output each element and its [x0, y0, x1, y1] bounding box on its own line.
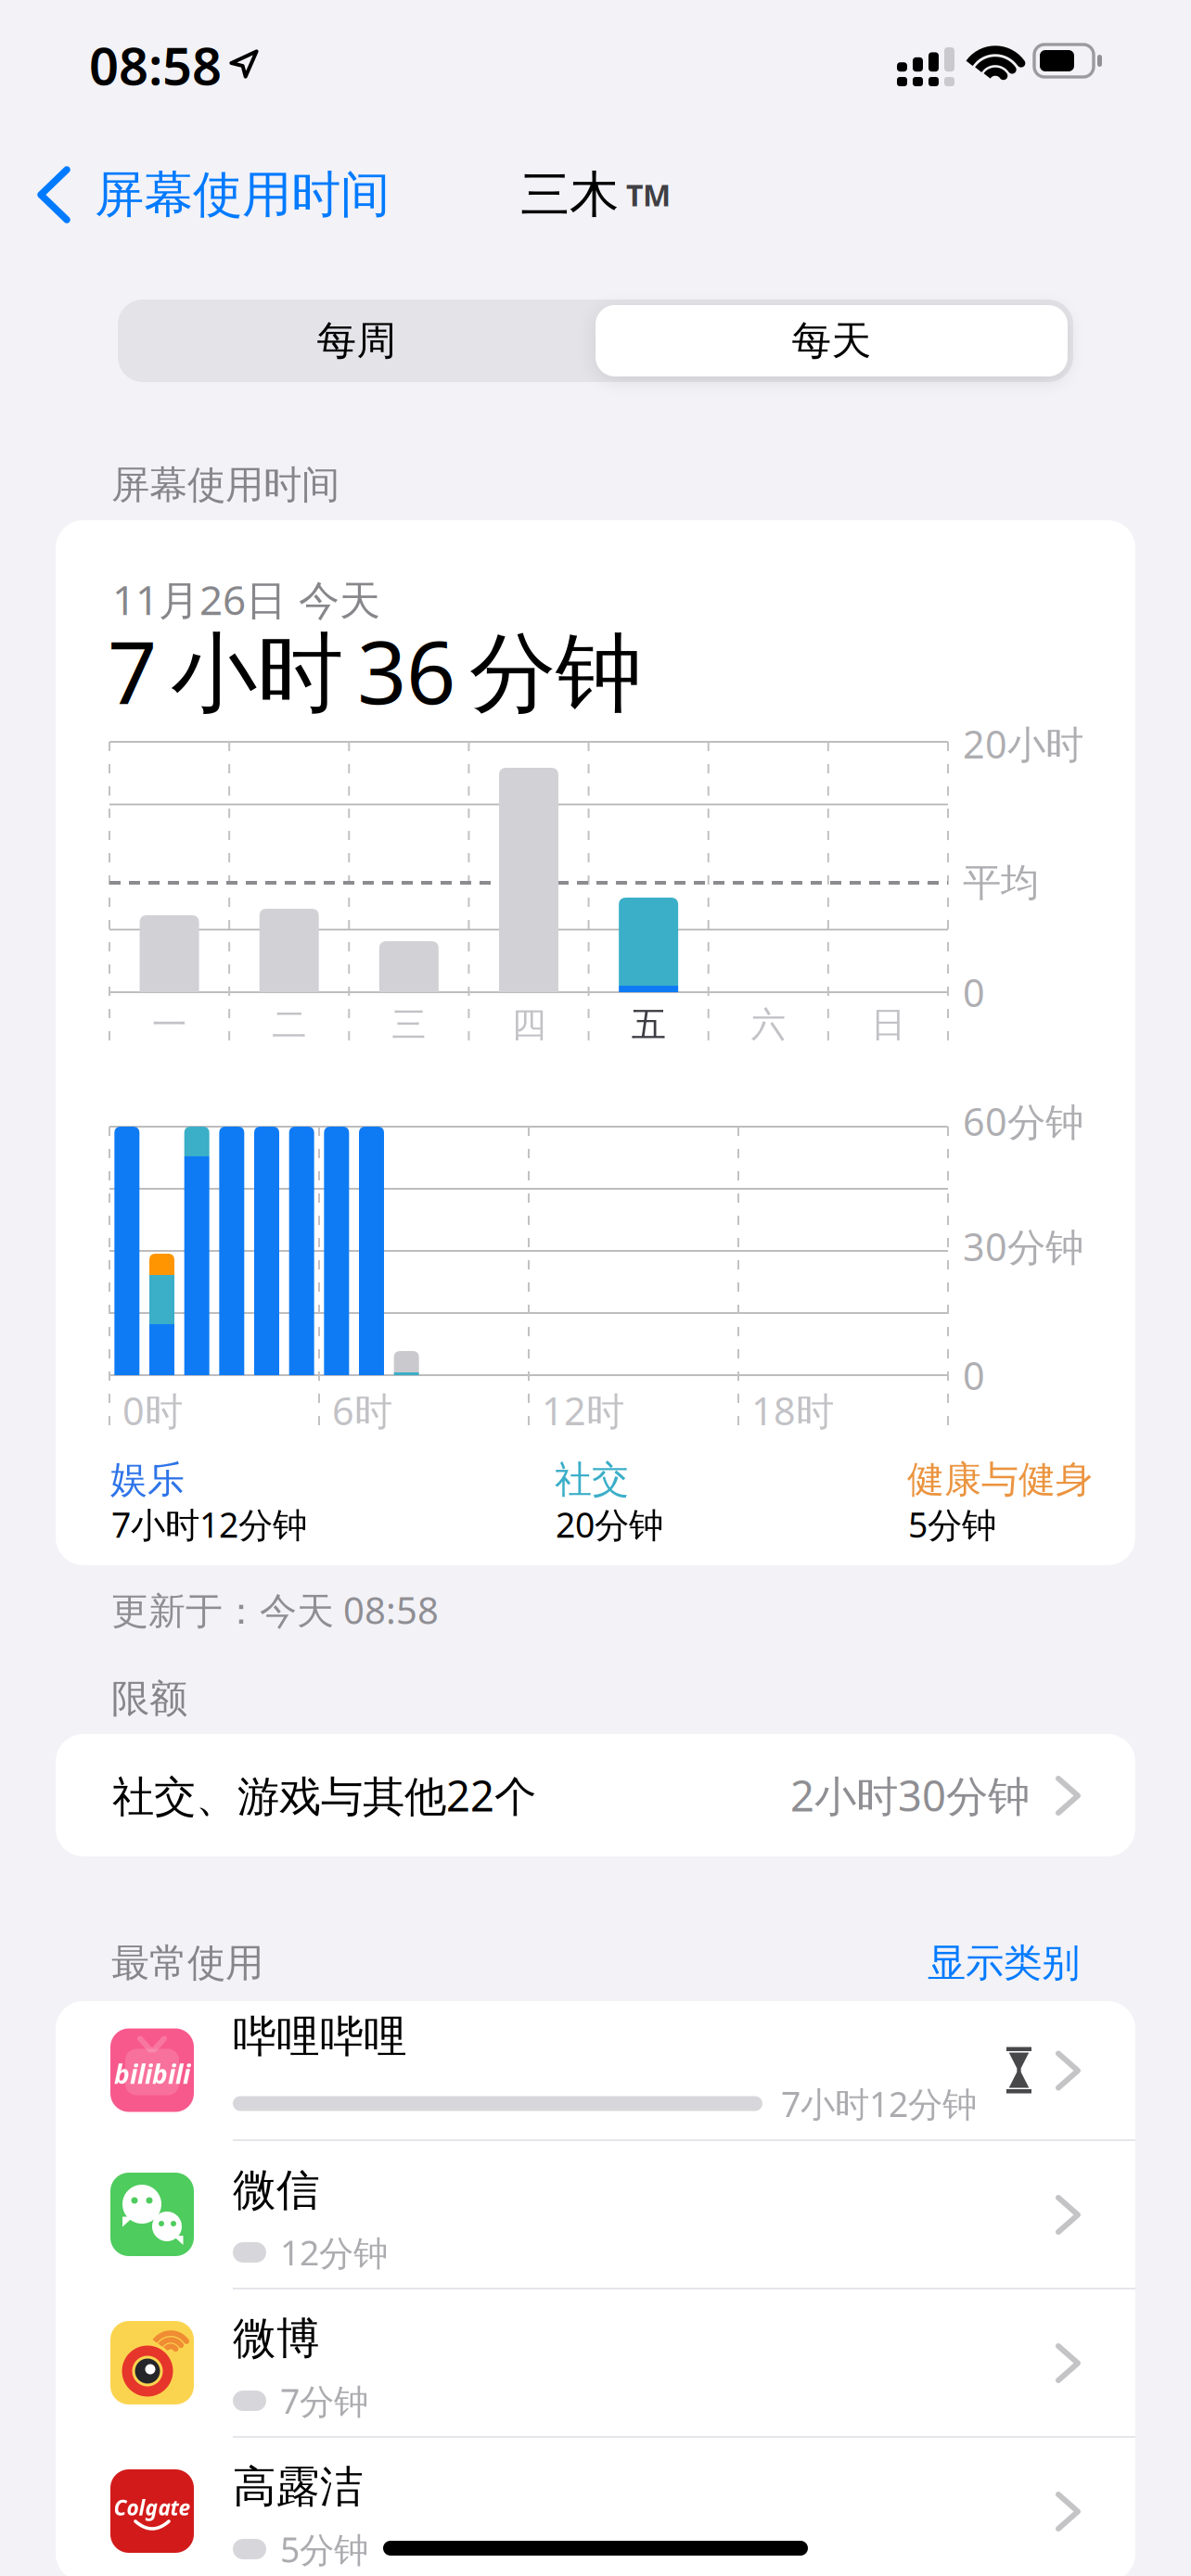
staticText: 每天 [792, 316, 871, 365]
staticText: 微博 [233, 2312, 320, 2365]
staticText: 高露洁 [233, 2460, 364, 2514]
button[interactable]: bilibili [56, 2001, 1135, 2139]
button[interactable]: 显示类别 [928, 1940, 1080, 1987]
button[interactable]: 每周 [118, 300, 595, 382]
staticText: 二 [272, 1003, 306, 1046]
staticText: 5分钟 [908, 1501, 996, 1547]
staticText: 11月26日 今天 [112, 572, 380, 626]
button[interactable]: 社交、游戏与其他22个 [56, 1734, 1135, 1856]
staticText: 20小时 [963, 718, 1083, 769]
staticText: 18时 [751, 1385, 834, 1436]
staticText: 7分钟 [280, 2378, 368, 2424]
staticText: 六 [751, 1003, 785, 1046]
staticText: 社交 [555, 1457, 629, 1502]
staticText: 日 [871, 1003, 905, 1046]
button[interactable]: 微信 [56, 2141, 1135, 2288]
staticText: 2小时30分钟 [790, 1767, 1030, 1823]
staticText: 显示类别 [928, 1940, 1080, 1987]
staticText: 7小时12分钟 [111, 1501, 307, 1547]
button[interactable]: Colgate [56, 2438, 1135, 2576]
staticText: bilibili [114, 2057, 190, 2091]
staticText: 60分钟 [963, 1096, 1083, 1147]
staticText: 四 [512, 1003, 546, 1046]
button[interactable]: 微博 [56, 2289, 1135, 2436]
staticText: 健康与健身 [907, 1457, 1093, 1502]
staticText: 0时 [122, 1385, 183, 1436]
staticText: 最常使用 [111, 1940, 263, 1987]
staticText: 12分钟 [280, 2229, 388, 2275]
staticText: 20分钟 [556, 1501, 663, 1547]
staticText: 08:58 [89, 30, 222, 99]
staticText: 7小时12分钟 [781, 2081, 977, 2127]
staticText: 一 [152, 1003, 187, 1046]
staticText: 微信 [233, 2164, 320, 2217]
staticText: 6时 [332, 1385, 392, 1436]
staticText: TM [626, 175, 671, 214]
staticText: 0 [963, 967, 985, 1018]
staticText: 三木 [520, 164, 619, 225]
staticText: 限额 [111, 1675, 187, 1722]
staticText: 7 小时 36 分钟 [108, 613, 642, 728]
button[interactable]: 屏幕使用时间 [41, 165, 390, 224]
staticText: 娱乐 [110, 1457, 185, 1502]
staticText: 12时 [542, 1385, 624, 1436]
staticText: 哔哩哔哩 [233, 2010, 407, 2063]
staticText: 屏幕使用时间 [95, 164, 390, 225]
staticText: 5分钟 [280, 2526, 368, 2572]
staticText: 五 [631, 1003, 666, 1046]
staticText: 30分钟 [963, 1221, 1083, 1272]
staticText: Colgate [114, 2493, 191, 2521]
staticText: 社交、游戏与其他22个 [112, 1767, 536, 1823]
staticText: 每周 [317, 316, 397, 365]
staticText: 屏幕使用时间 [111, 461, 339, 509]
staticText: 0 [963, 1350, 985, 1401]
button[interactable]: 每天 [595, 305, 1068, 376]
staticText: 平均 [963, 859, 1039, 906]
staticText: 三 [392, 1003, 426, 1046]
staticText: 更新于：今天 08:58 [111, 1585, 439, 1634]
